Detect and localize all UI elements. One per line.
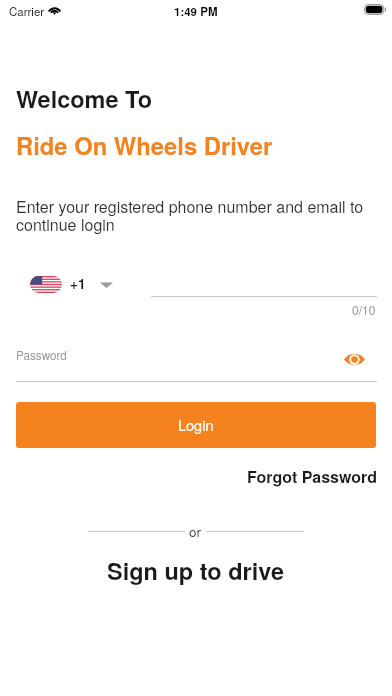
- staticText: Ride On Wheels Driver: [16, 128, 273, 162]
- staticText: Password: [16, 347, 67, 364]
- button[interactable]: Password: [16, 344, 377, 382]
- button[interactable]: Forgot Password: [240, 463, 384, 489]
- staticText: +1: [70, 274, 86, 293]
- staticText: continue login: [16, 213, 115, 236]
- button[interactable]: Phone number: [151, 272, 377, 297]
- staticText: 1:49 PM: [174, 3, 218, 19]
- staticText: Sign up to drive: [107, 554, 285, 586]
- staticText: 0/10: [352, 301, 376, 318]
- staticText: Carrier: [9, 3, 45, 19]
- button[interactable]: Login: [16, 402, 376, 448]
- button[interactable]: Sign up to drive: [100, 554, 292, 586]
- staticText: Login: [178, 414, 214, 435]
- staticText: Enter your registered phone number and e…: [16, 195, 364, 218]
- staticText: Welcome To: [16, 82, 153, 116]
- button[interactable]: Show password: [338, 346, 370, 372]
- staticText: or: [189, 522, 202, 538]
- button[interactable]: Select country code: [24, 270, 118, 298]
- staticText: Forgot Password: [247, 465, 378, 488]
